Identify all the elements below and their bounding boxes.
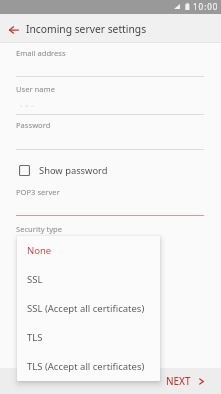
button[interactable]: SSL (17, 265, 160, 294)
staticText: User name (16, 84, 55, 94)
staticText: POP3 server (16, 187, 60, 197)
button[interactable]: SSL (Accept all certificates) (17, 294, 160, 323)
staticText: None (27, 244, 52, 257)
button[interactable]: Show password (14, 161, 113, 180)
staticText: Show password (39, 164, 108, 177)
button[interactable]: NEXT (160, 370, 210, 393)
staticText: Password (16, 120, 51, 130)
button[interactable]: TLS (Accept all certificates) (17, 352, 160, 381)
staticText: Incoming server settings (26, 22, 147, 36)
button[interactable]: TLS (17, 323, 160, 352)
button[interactable]: Back (3, 19, 24, 40)
staticText: Security type (16, 224, 63, 234)
staticText: TLS (27, 331, 43, 344)
button[interactable]: None (17, 236, 160, 265)
staticText: TLS (Accept all certificates) (27, 360, 145, 373)
staticText: NEXT (166, 375, 191, 388)
staticText: 10:00 (193, 1, 219, 12)
staticText: SSL (27, 273, 43, 286)
staticText: SSL (Accept all certificates) (27, 302, 145, 315)
staticText: Email address (16, 48, 66, 58)
